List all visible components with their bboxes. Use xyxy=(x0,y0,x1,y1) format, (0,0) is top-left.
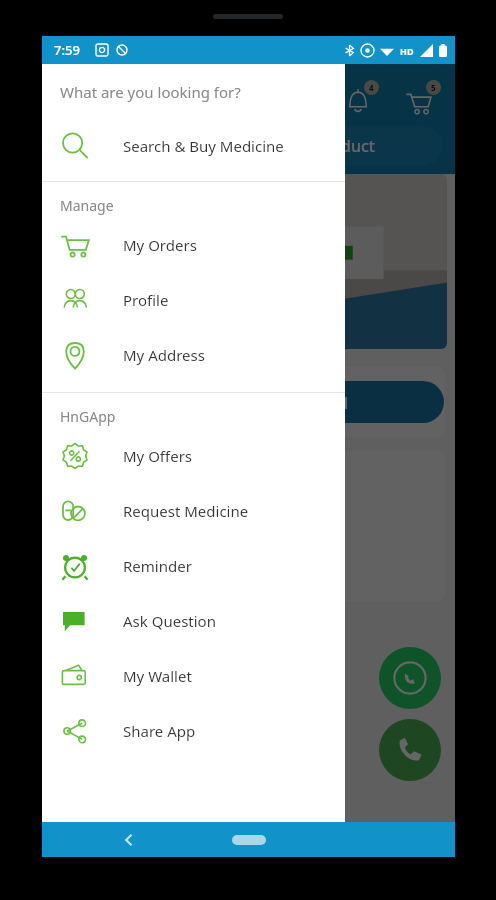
button[interactable]: My Wallet xyxy=(42,648,345,703)
staticText: Profile xyxy=(123,290,169,310)
staticText: 7:59 xyxy=(54,41,80,59)
staticText: Ask Question xyxy=(123,611,216,631)
staticText: Share App xyxy=(123,721,196,741)
button[interactable]: Back xyxy=(114,825,144,855)
staticText: HnGApp xyxy=(60,407,116,426)
button[interactable]: OTC Product xyxy=(212,126,442,166)
button[interactable]: Ask Question xyxy=(42,593,345,648)
button[interactable]: Upload xyxy=(194,381,444,423)
staticText: 4 xyxy=(369,82,374,93)
staticText: Upload xyxy=(290,391,349,414)
staticText: Search & Buy Medicine xyxy=(123,136,284,156)
button[interactable]: Cart xyxy=(405,80,441,116)
button[interactable]: WhatsApp xyxy=(379,647,441,709)
staticText: HD xyxy=(400,45,414,57)
staticText: OTC Product xyxy=(280,135,375,157)
staticText: Request Medicine xyxy=(123,501,249,521)
button[interactable]: Notifications xyxy=(345,80,379,114)
staticText: My Offers xyxy=(123,446,193,466)
button[interactable]: Call xyxy=(379,719,441,781)
button[interactable]: My Address xyxy=(42,327,345,382)
staticText: My Wallet xyxy=(123,666,192,686)
button[interactable]: My Offers xyxy=(42,428,345,483)
staticText: My Address xyxy=(123,345,205,365)
button[interactable]: Profile xyxy=(42,272,345,327)
staticText: Reminder xyxy=(123,556,192,576)
staticText: Manage xyxy=(60,196,114,215)
staticText: My Orders xyxy=(123,235,197,255)
button[interactable]: Home xyxy=(232,835,266,845)
button[interactable]: Search & Buy Medicine xyxy=(42,118,345,173)
button[interactable]: Share App xyxy=(42,703,345,758)
staticText: What are you looking for? xyxy=(60,82,241,102)
staticText: 5 xyxy=(431,82,436,93)
button[interactable]: Reminder xyxy=(42,538,345,593)
button[interactable]: My Orders xyxy=(42,217,345,272)
button[interactable]: Request Medicine xyxy=(42,483,345,538)
